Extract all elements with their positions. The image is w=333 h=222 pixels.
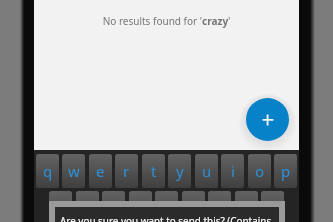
button[interactable]: Add [246,98,289,141]
button[interactable]: g [155,191,178,222]
button[interactable]: p [274,154,297,188]
button[interactable]: w [62,154,85,188]
staticText: a [56,198,65,218]
button[interactable]: k [235,191,258,222]
button[interactable]: o [248,154,271,188]
staticText: i [231,161,235,181]
staticText: r [123,161,130,181]
staticText: k [242,198,251,218]
button[interactable]: u [195,154,218,188]
button[interactable]: a [49,191,72,222]
staticText: h [189,198,199,218]
staticText: p [281,161,291,181]
button[interactable]: l [261,191,284,222]
staticText: g [162,198,172,218]
button[interactable]: q [36,154,59,188]
button[interactable]: f [129,191,152,222]
staticText: d [109,198,119,218]
staticText: s [84,198,92,218]
button[interactable]: y [168,154,191,188]
staticText: q [43,161,53,181]
staticText: j [218,198,222,218]
button[interactable]: d [102,191,125,222]
button[interactable]: s [76,191,99,222]
staticText: t [151,161,157,181]
button[interactable]: t [142,154,165,188]
button[interactable]: r [115,154,138,188]
staticText: o [255,161,265,181]
button[interactable]: i [221,154,244,188]
staticText: y [176,161,184,181]
staticText: f [138,198,144,218]
staticText: No results found for 'crazy' [34,14,299,28]
staticText: u [202,161,212,181]
staticText: l [271,198,275,218]
button[interactable]: h [182,191,205,222]
staticText: e [96,161,105,181]
staticText: Are you sure you want to send this? (Con… [60,214,272,222]
staticText: w [68,161,80,181]
button[interactable]: j [208,191,231,222]
button[interactable]: e [89,154,112,188]
